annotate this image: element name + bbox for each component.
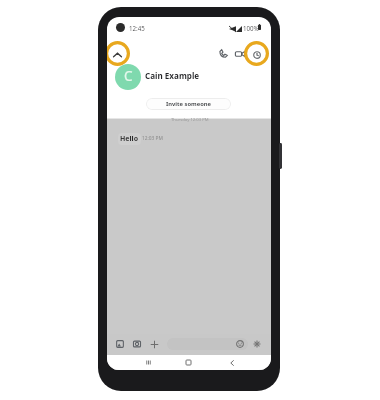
button[interactable]: History [244,41,269,66]
staticText: 12:03 PM [142,135,163,141]
button[interactable]: Hello [120,134,139,144]
button[interactable]: Gallery [116,340,124,348]
button[interactable]: Collapse header [107,41,130,66]
button[interactable]: C [115,64,141,90]
staticText: Cain Example [145,70,200,81]
button[interactable]: Recent apps [136,355,160,370]
staticText: 12:45 [129,24,145,31]
staticText: C [124,67,133,85]
button[interactable]: Voice call [218,48,229,59]
button[interactable]: Video call [234,48,245,59]
button[interactable]: Stickers [253,340,261,348]
button[interactable]: Invite someone [146,98,231,110]
staticText: 100% [243,24,259,31]
button[interactable]: Add attachment [150,340,159,349]
staticText: Hello [120,134,139,144]
button[interactable] [167,338,248,350]
button[interactable]: Home [176,355,200,370]
button[interactable]: Emoji [236,340,244,348]
staticText: Thursday 12:03 PM [171,117,209,123]
staticText: Invite someone [166,100,212,108]
button[interactable]: Camera [133,340,141,348]
button[interactable]: Back [220,355,244,370]
